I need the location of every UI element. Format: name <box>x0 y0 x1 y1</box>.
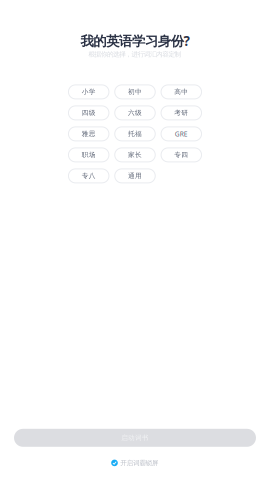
button[interactable]: 考研 <box>161 105 202 120</box>
staticText: 家长 <box>128 151 142 159</box>
button[interactable]: 启动词书 <box>14 429 256 447</box>
staticText: GRE <box>175 129 188 138</box>
button[interactable]: 家长 <box>114 147 156 162</box>
staticText: 小学 <box>82 88 96 96</box>
button[interactable]: 六级 <box>114 105 156 120</box>
button[interactable]: 专八 <box>68 168 109 183</box>
staticText: 四级 <box>82 109 96 117</box>
button[interactable]: 小学 <box>68 84 109 99</box>
staticText: 职场 <box>82 151 96 159</box>
button[interactable]: 职场 <box>68 147 109 162</box>
button[interactable]: 高中 <box>161 84 202 99</box>
staticText: 根据你的选择，进行词汇内容定制 <box>88 50 181 58</box>
staticText: 我的英语学习身份? <box>80 32 190 50</box>
staticText: 开启词霸锁屏 <box>120 459 159 467</box>
staticText: 高中 <box>174 88 188 96</box>
button[interactable]: 专四 <box>161 147 202 162</box>
staticText: 托福 <box>128 130 142 138</box>
staticText: 专八 <box>82 172 96 180</box>
staticText: 考研 <box>174 109 188 117</box>
button[interactable]: 初中 <box>114 84 156 99</box>
button[interactable]: 通用 <box>114 168 156 183</box>
button[interactable]: 四级 <box>68 105 109 120</box>
staticText: 六级 <box>128 109 142 117</box>
button[interactable]: 雅思 <box>68 126 109 141</box>
button[interactable]: 开启词霸锁屏 <box>105 456 165 470</box>
staticText: 雅思 <box>82 130 96 138</box>
staticText: 专四 <box>174 151 188 159</box>
staticText: 初中 <box>128 88 142 96</box>
staticText: 启动词书 <box>121 434 149 442</box>
staticText: 通用 <box>128 172 142 180</box>
button[interactable]: GRE <box>161 126 202 141</box>
button[interactable]: 托福 <box>114 126 156 141</box>
